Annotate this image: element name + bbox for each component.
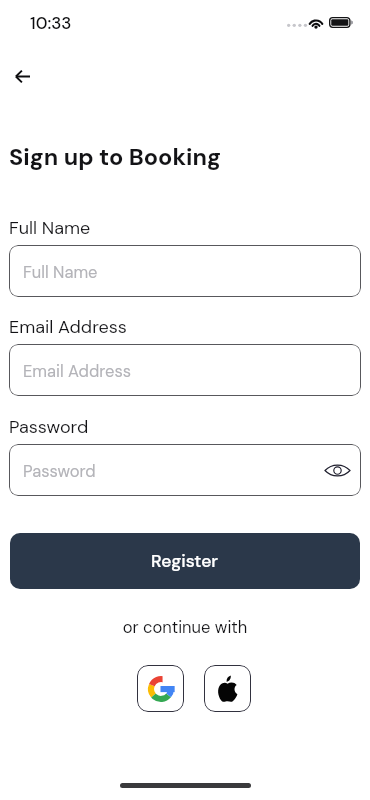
button[interactable]: Show password <box>322 455 352 485</box>
staticText: Email Address <box>23 361 131 382</box>
staticText: Full Name <box>23 262 98 283</box>
staticText: Full Name <box>9 216 91 239</box>
staticText: Password <box>23 461 96 482</box>
staticText: or continue with <box>0 617 370 638</box>
staticText: Password <box>9 415 89 438</box>
button[interactable]: Full Name <box>9 245 361 297</box>
button[interactable]: Password <box>9 444 361 496</box>
button[interactable]: Back <box>2 56 42 96</box>
button[interactable]: Register <box>10 533 360 589</box>
staticText: Sign up to Booking <box>9 142 221 173</box>
button[interactable]: Email Address <box>9 344 361 396</box>
button[interactable]: Continue with Apple <box>204 665 251 712</box>
button[interactable]: Continue with Google <box>137 665 184 712</box>
staticText: Email Address <box>9 315 127 338</box>
staticText: Register <box>151 550 219 573</box>
staticText: 10:33 <box>30 12 72 34</box>
